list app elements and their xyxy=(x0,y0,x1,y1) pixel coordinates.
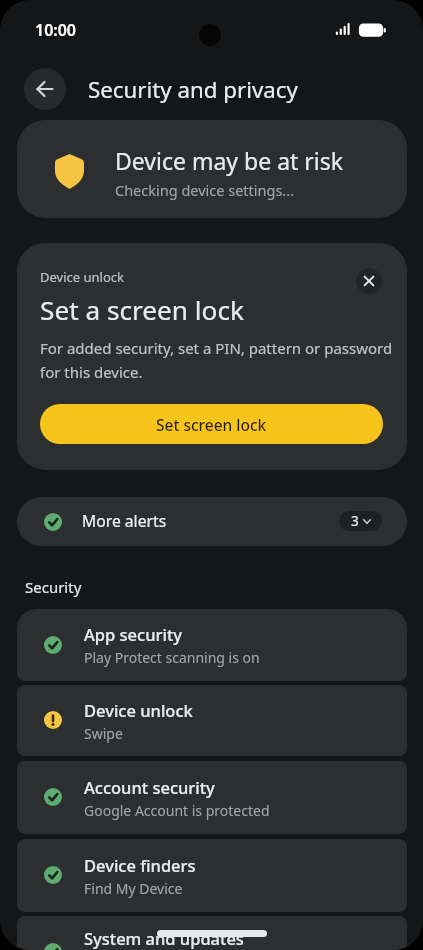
staticText: Device unlock xyxy=(84,699,193,721)
staticText: More alerts xyxy=(82,510,167,531)
staticText: App security xyxy=(84,623,182,645)
staticText: Play Protect scanning is on xyxy=(84,648,260,667)
staticText: Set screen lock xyxy=(156,414,267,435)
staticText: Find My Device xyxy=(84,879,183,898)
button[interactable]: Account security xyxy=(17,761,407,834)
staticText: Swipe xyxy=(84,724,123,743)
staticText: Account security xyxy=(84,776,215,798)
staticText: System and updates xyxy=(84,927,244,949)
button[interactable]: Device unlock xyxy=(17,685,407,756)
button[interactable]: 3 xyxy=(339,511,382,531)
button[interactable]: Device may be at risk xyxy=(17,120,407,218)
staticText: Device finders xyxy=(84,854,196,876)
staticText: Google Account is protected xyxy=(84,801,270,820)
button[interactable]: App security xyxy=(17,609,407,681)
staticText: Checking device settings... xyxy=(115,180,295,200)
staticText: Device unlock xyxy=(40,268,124,286)
staticText: Device may be at risk xyxy=(115,145,344,176)
staticText: Set a screen lock xyxy=(40,292,244,328)
staticText: 10:00 xyxy=(35,19,77,41)
staticText: for this device. xyxy=(40,362,143,382)
staticText: For added security, set a PIN, pattern o… xyxy=(40,338,393,358)
staticText: 3 xyxy=(351,512,359,530)
button[interactable]: Set screen lock xyxy=(40,404,383,444)
button[interactable]: More alerts xyxy=(17,497,407,546)
staticText: Security xyxy=(25,577,82,597)
button[interactable] xyxy=(356,268,382,294)
button[interactable]: System and updates xyxy=(17,916,407,950)
button[interactable] xyxy=(24,68,66,110)
button[interactable]: Device finders xyxy=(17,839,407,912)
staticText: Security and privacy xyxy=(88,74,298,104)
